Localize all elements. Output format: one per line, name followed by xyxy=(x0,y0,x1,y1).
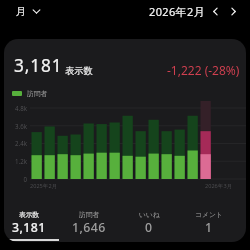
staticText: 3,181 xyxy=(12,219,46,236)
staticText: 表示数 xyxy=(65,65,93,77)
staticText: 4.8k xyxy=(14,104,27,112)
staticText: -1,222 (-28%) xyxy=(167,62,240,78)
button[interactable]: Previous month xyxy=(208,4,222,18)
button[interactable]: コメント xyxy=(179,202,239,242)
staticText: コメント xyxy=(195,210,223,219)
staticText: 表示数 xyxy=(19,210,40,219)
staticText: 2025年2月 xyxy=(30,182,58,190)
staticText: 3.6k xyxy=(14,122,27,130)
button[interactable]: Next month xyxy=(226,4,240,18)
staticText: 訪問者 xyxy=(27,89,48,98)
staticText: 2026年2月 xyxy=(149,4,205,19)
staticText: 0 xyxy=(23,175,27,183)
staticText: 1,646 xyxy=(72,219,106,236)
button[interactable]: いいね xyxy=(119,202,179,242)
staticText: 0 xyxy=(145,219,153,236)
staticText: 1.2k xyxy=(14,157,27,165)
button[interactable]: 表示数 xyxy=(4,202,59,242)
staticText: 月 xyxy=(16,5,26,18)
staticText: 2.4k xyxy=(14,139,27,147)
staticText: いいね xyxy=(139,210,160,219)
staticText: 2026年3月 xyxy=(205,182,233,190)
staticText: 1 xyxy=(205,219,213,236)
button[interactable]: 月 xyxy=(13,3,44,20)
staticText: 訪問者 xyxy=(79,210,100,219)
button[interactable]: 訪問者 xyxy=(59,202,119,242)
staticText: 3,181 xyxy=(14,54,63,77)
